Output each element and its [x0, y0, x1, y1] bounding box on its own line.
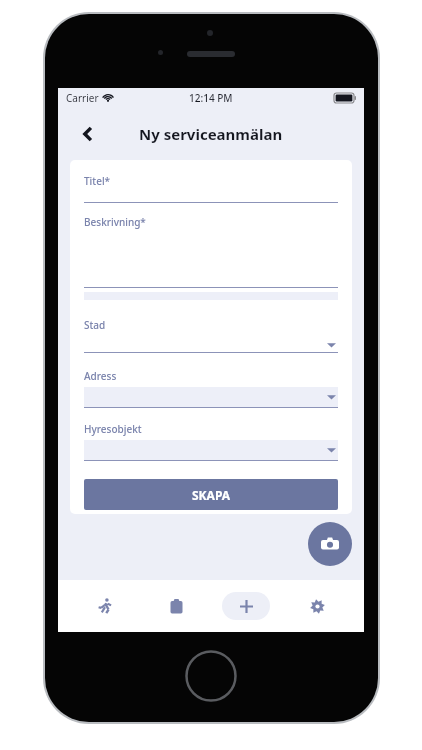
staticText: Adress: [84, 369, 117, 383]
button[interactable]: [84, 387, 338, 408]
button[interactable]: Add: [222, 592, 270, 620]
button[interactable]: Back: [72, 118, 104, 150]
staticText: 12:14 PM: [189, 91, 233, 105]
staticText: Carrier: [66, 91, 99, 105]
button[interactable]: Activity: [81, 586, 129, 626]
staticText: Beskrivning*: [84, 215, 146, 229]
button[interactable]: Tasks: [152, 586, 200, 626]
staticText: Stad: [84, 318, 106, 332]
staticText: Ny serviceanmälan: [139, 124, 283, 144]
button[interactable]: Take photo: [308, 522, 352, 566]
staticText: Hyresobjekt: [84, 422, 142, 436]
staticText: SKAPA: [192, 487, 231, 503]
button[interactable]: SKAPA: [84, 479, 338, 510]
button[interactable]: [84, 338, 338, 353]
button[interactable]: [84, 440, 338, 461]
staticText: Titel*: [84, 174, 111, 188]
button[interactable]: Settings: [293, 586, 341, 626]
